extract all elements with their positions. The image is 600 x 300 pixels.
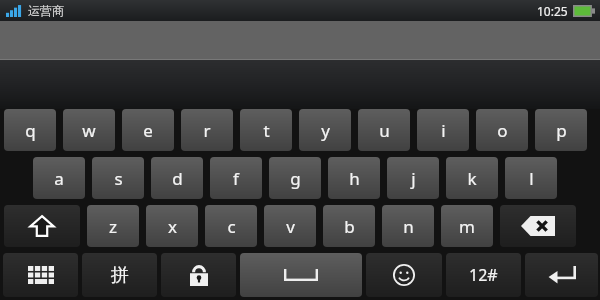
button[interactable]: l: [505, 157, 557, 199]
button[interactable]: Shift: [4, 205, 80, 247]
button[interactable]: x: [146, 205, 198, 247]
button[interactable]: y: [299, 109, 351, 151]
staticText: p: [556, 119, 567, 142]
staticText: z: [109, 215, 117, 238]
button[interactable]: w: [63, 109, 115, 151]
button[interactable]: a: [33, 157, 85, 199]
staticText: m: [459, 215, 475, 238]
staticText: e: [143, 119, 153, 142]
button[interactable]: Switch keyboard: [3, 253, 78, 297]
button[interactable]: n: [382, 205, 434, 247]
staticText: o: [497, 119, 508, 142]
staticText: s: [114, 167, 123, 190]
button[interactable]: i: [417, 109, 469, 151]
button[interactable]: Enter: [525, 253, 598, 297]
staticText: u: [379, 119, 390, 142]
button[interactable]: t: [240, 109, 292, 151]
staticText: k: [467, 167, 477, 190]
staticText: f: [233, 167, 239, 190]
button[interactable]: Space: [240, 253, 362, 297]
staticText: w: [82, 119, 96, 142]
button[interactable]: e: [122, 109, 174, 151]
button[interactable]: 拼: [82, 253, 157, 297]
staticText: l: [529, 167, 534, 190]
staticText: 12#: [469, 264, 498, 286]
staticText: 10:25: [537, 3, 568, 19]
button[interactable]: s: [92, 157, 144, 199]
staticText: 拼: [111, 264, 129, 287]
button[interactable]: Emoji: [366, 253, 442, 297]
staticText: n: [403, 215, 414, 238]
button[interactable]: k: [446, 157, 498, 199]
staticText: 运营商: [28, 3, 64, 18]
button[interactable]: 12#: [446, 253, 521, 297]
staticText: j: [411, 167, 416, 190]
staticText: h: [349, 167, 360, 190]
button[interactable]: Backspace: [500, 205, 576, 247]
staticText: d: [172, 167, 183, 190]
button[interactable]: j: [387, 157, 439, 199]
staticText: b: [344, 215, 355, 238]
button[interactable]: u: [358, 109, 410, 151]
staticText: i: [441, 119, 446, 142]
staticText: a: [54, 167, 64, 190]
button[interactable]: b: [323, 205, 375, 247]
staticText: x: [168, 215, 177, 238]
staticText: y: [321, 119, 330, 142]
button[interactable]: h: [328, 157, 380, 199]
button[interactable]: p: [535, 109, 587, 151]
button[interactable]: r: [181, 109, 233, 151]
staticText: v: [286, 215, 295, 238]
button[interactable]: Lock: [161, 253, 236, 297]
button[interactable]: f: [210, 157, 262, 199]
button[interactable]: o: [476, 109, 528, 151]
button[interactable]: g: [269, 157, 321, 199]
staticText: t: [263, 119, 270, 142]
button[interactable]: m: [441, 205, 493, 247]
button[interactable]: v: [264, 205, 316, 247]
button[interactable]: d: [151, 157, 203, 199]
button[interactable]: q: [4, 109, 56, 151]
button[interactable]: z: [87, 205, 139, 247]
staticText: g: [290, 167, 301, 190]
button[interactable]: c: [205, 205, 257, 247]
staticText: q: [25, 119, 36, 142]
staticText: r: [203, 119, 211, 142]
staticText: c: [227, 215, 236, 238]
